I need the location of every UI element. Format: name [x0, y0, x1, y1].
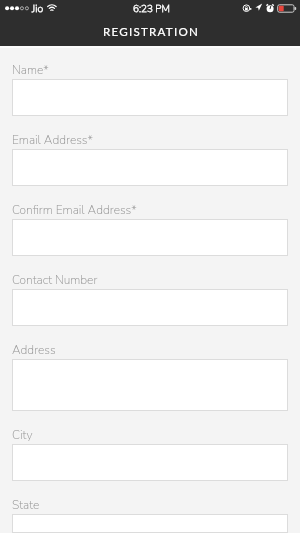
staticText: Address [12, 342, 56, 358]
button[interactable] [12, 514, 288, 533]
staticText: REGISTRATION [103, 25, 200, 39]
staticText: Jio [32, 1, 44, 15]
staticText: Confirm Email Address* [12, 202, 137, 218]
button[interactable] [12, 219, 288, 256]
staticText: 6:23 PM [133, 2, 170, 16]
button[interactable] [12, 149, 288, 186]
button[interactable] [12, 359, 288, 411]
staticText: State [12, 497, 40, 513]
button[interactable] [12, 289, 288, 326]
staticText: Email Address* [12, 132, 93, 148]
staticText: Name* [12, 62, 49, 78]
staticText: City [12, 427, 33, 443]
staticText: Contact Number [12, 272, 98, 288]
button[interactable] [12, 79, 288, 116]
button[interactable] [12, 444, 288, 481]
